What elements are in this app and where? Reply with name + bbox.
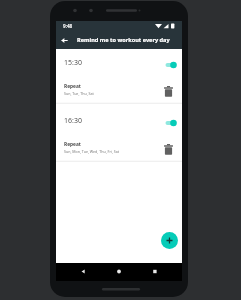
button[interactable]: Delete: [160, 83, 176, 99]
staticText: 15:30: [64, 58, 82, 68]
staticText: Sun, Mon, Tue, Wed, Thu, Fri, Sat: [64, 149, 120, 154]
button[interactable]: 16:30: [56, 107, 182, 162]
button[interactable]: Toggle alarm: [163, 119, 177, 127]
staticText: Sun, Tue, Thu, Sat: [64, 91, 94, 96]
staticText: Repeat: [64, 83, 81, 90]
staticText: 9:48: [63, 23, 73, 29]
staticText: 16:30: [64, 116, 82, 126]
button[interactable]: Delete: [160, 141, 176, 157]
button[interactable]: Back: [59, 35, 70, 46]
staticText: Repeat: [64, 141, 81, 148]
button[interactable]: Add reminder: [161, 232, 178, 249]
staticText: Remind me to workout every day: [77, 36, 170, 44]
button[interactable]: Toggle alarm: [163, 61, 177, 69]
button[interactable]: 15:30: [56, 49, 182, 104]
